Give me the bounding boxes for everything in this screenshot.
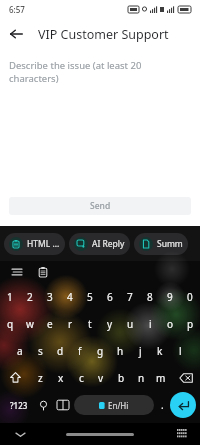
staticText: j bbox=[139, 344, 142, 358]
button[interactable]: y bbox=[100, 310, 120, 337]
staticText: 7 bbox=[127, 290, 133, 304]
staticText: VIP Customer Support bbox=[38, 26, 169, 43]
button[interactable]: k bbox=[150, 337, 170, 364]
button[interactable]: l bbox=[170, 337, 190, 364]
button[interactable]: 2 bbox=[20, 283, 40, 310]
staticText: z bbox=[38, 371, 43, 385]
staticText: 6 bbox=[107, 290, 113, 304]
button[interactable]: s bbox=[30, 337, 50, 364]
button[interactable]: b bbox=[111, 364, 131, 391]
staticText: g bbox=[97, 344, 104, 358]
staticText: 6:57 bbox=[9, 4, 25, 15]
button[interactable]: Summ bbox=[134, 233, 188, 255]
staticText: HTML ... bbox=[27, 238, 60, 250]
staticText: 5 bbox=[87, 290, 93, 304]
staticText: x bbox=[58, 371, 64, 385]
staticText: p bbox=[187, 317, 194, 331]
staticText: c bbox=[79, 371, 84, 385]
staticText: t bbox=[88, 317, 92, 331]
button[interactable]: 0 bbox=[180, 283, 200, 310]
button[interactable]: . bbox=[154, 391, 170, 419]
staticText: Summ bbox=[157, 238, 183, 250]
staticText: v bbox=[98, 371, 104, 385]
staticText: 2 bbox=[27, 290, 33, 304]
staticText: b bbox=[118, 371, 125, 385]
staticText: Describe the issue (at least 20 characte… bbox=[9, 59, 142, 85]
button[interactable]: v bbox=[91, 364, 111, 391]
button[interactable]: Menu bbox=[8, 263, 26, 281]
button[interactable]: Shift bbox=[0, 364, 30, 391]
staticText: AI Reply bbox=[92, 238, 125, 250]
button[interactable]: 3 bbox=[40, 283, 60, 310]
staticText: h bbox=[117, 344, 124, 358]
button[interactable]: w bbox=[20, 310, 40, 337]
button[interactable]: o bbox=[160, 310, 180, 337]
staticText: 3 bbox=[47, 290, 53, 304]
button[interactable]: AI Reply bbox=[69, 233, 130, 255]
button[interactable]: 7 bbox=[120, 283, 140, 310]
button[interactable]: ?123 bbox=[4, 391, 34, 419]
button[interactable]: m bbox=[151, 364, 171, 391]
button[interactable]: t bbox=[80, 310, 100, 337]
staticText: r bbox=[68, 317, 73, 331]
button[interactable]: j bbox=[130, 337, 150, 364]
staticText: 4 bbox=[67, 290, 73, 304]
staticText: ?123 bbox=[10, 400, 28, 411]
button[interactable]: 5 bbox=[80, 283, 100, 310]
button[interactable]: 8 bbox=[140, 283, 160, 310]
staticText: En/Hi bbox=[108, 400, 129, 411]
button[interactable]: HTML ... bbox=[4, 233, 65, 255]
button[interactable]: g bbox=[90, 337, 110, 364]
staticText: Send bbox=[90, 200, 111, 212]
staticText: o bbox=[167, 317, 174, 331]
staticText: 8 bbox=[147, 290, 153, 304]
button[interactable]: x bbox=[51, 364, 71, 391]
staticText: u bbox=[127, 317, 134, 331]
button[interactable]: r bbox=[60, 310, 80, 337]
button[interactable]: q bbox=[0, 310, 20, 337]
staticText: n bbox=[138, 371, 145, 385]
staticText: s bbox=[38, 344, 43, 358]
staticText: l bbox=[179, 344, 182, 358]
staticText: k bbox=[157, 344, 163, 358]
button[interactable]: 6 bbox=[100, 283, 120, 310]
button[interactable]: n bbox=[131, 364, 151, 391]
staticText: i bbox=[149, 317, 152, 331]
button[interactable]: d bbox=[50, 337, 70, 364]
staticText: y bbox=[107, 317, 113, 331]
button[interactable]: 9 bbox=[160, 283, 180, 310]
button[interactable]: Enter bbox=[170, 392, 196, 418]
staticText: q bbox=[7, 317, 14, 331]
staticText: e bbox=[47, 317, 53, 331]
button[interactable]: a bbox=[10, 337, 30, 364]
button[interactable]: En/Hi bbox=[74, 395, 154, 415]
staticText: 0 bbox=[187, 290, 193, 304]
staticText: . bbox=[161, 398, 164, 412]
staticText: d bbox=[57, 344, 64, 358]
button[interactable]: f bbox=[70, 337, 90, 364]
button[interactable]: Keyboard switcher bbox=[174, 426, 190, 442]
button[interactable]: p bbox=[180, 310, 200, 337]
button[interactable]: i bbox=[140, 310, 160, 337]
staticText: 1 bbox=[7, 290, 13, 304]
staticText: 9 bbox=[167, 290, 173, 304]
button[interactable]: Backspace bbox=[171, 364, 200, 391]
button[interactable]: Send bbox=[9, 197, 191, 215]
button[interactable]: z bbox=[30, 364, 51, 391]
button[interactable]: h bbox=[110, 337, 130, 364]
button[interactable]: Clipboard bbox=[34, 263, 52, 281]
button[interactable]: u bbox=[120, 310, 140, 337]
button[interactable]: c bbox=[71, 364, 91, 391]
button[interactable]: Back bbox=[0, 18, 32, 50]
button[interactable]: 4 bbox=[60, 283, 80, 310]
button[interactable]: 1 bbox=[0, 283, 20, 310]
staticText: a bbox=[17, 344, 23, 358]
button[interactable]: Hide keyboard bbox=[12, 426, 28, 442]
staticText: f bbox=[78, 344, 82, 358]
button[interactable]: e bbox=[40, 310, 60, 337]
staticText: w bbox=[26, 317, 34, 331]
button[interactable]: Switch language bbox=[52, 391, 74, 419]
button[interactable]: Emoji bbox=[34, 391, 52, 419]
staticText: m bbox=[156, 371, 166, 385]
